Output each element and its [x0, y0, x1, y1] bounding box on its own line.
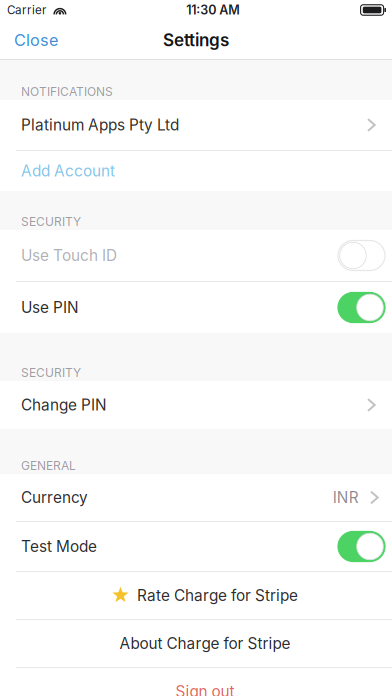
- button[interactable]: Add Account: [0, 151, 392, 191]
- staticText: Change PIN: [21, 396, 107, 414]
- button[interactable]: Test Mode: [0, 522, 392, 571]
- staticText: Test Mode: [21, 537, 97, 556]
- staticText: Close: [14, 30, 58, 50]
- staticText: SECURITY: [21, 365, 81, 380]
- staticText: Add Account: [21, 162, 115, 180]
- staticText: SECURITY: [21, 214, 81, 229]
- staticText: Rate Charge for Stripe: [137, 586, 298, 605]
- button[interactable]: Close: [0, 20, 70, 60]
- staticText: Currency: [21, 488, 88, 507]
- button[interactable]: Rate Charge for Stripe: [0, 572, 392, 619]
- staticText: NOTIFICATIONS: [21, 84, 113, 99]
- staticText: INR: [333, 488, 359, 507]
- button[interactable]: About Charge for Stripe: [0, 620, 392, 667]
- staticText: Settings: [163, 30, 229, 50]
- button[interactable]: Use PIN: [0, 282, 392, 333]
- staticText: Sign out: [175, 682, 234, 696]
- button[interactable]: Change PIN: [0, 381, 392, 429]
- button[interactable]: Sign out: [0, 668, 392, 696]
- staticText: Platinum Apps Pty Ltd: [21, 116, 179, 134]
- staticText: About Charge for Stripe: [119, 634, 290, 653]
- button[interactable]: Use Touch ID: [0, 230, 392, 281]
- staticText: Use Touch ID: [21, 246, 117, 265]
- staticText: Use PIN: [21, 298, 79, 317]
- staticText: 11:30 AM: [186, 2, 240, 18]
- staticText: GENERAL: [21, 458, 76, 473]
- button[interactable]: Platinum Apps Pty Ltd: [0, 100, 392, 150]
- button[interactable]: Currency: [0, 474, 392, 521]
- staticText: Carrier: [7, 3, 46, 17]
